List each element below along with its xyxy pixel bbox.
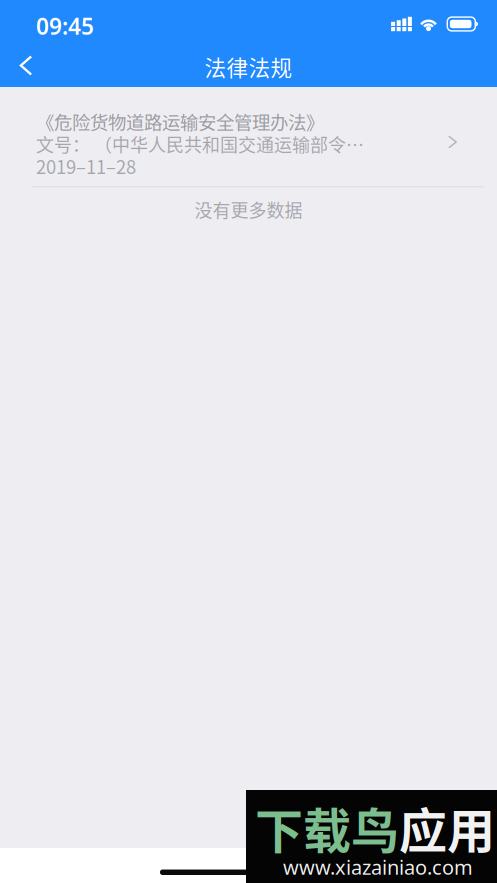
staticText: 09:45 — [36, 11, 94, 41]
button[interactable]: Back — [0, 44, 50, 87]
staticText: 2019–11–28 — [36, 153, 136, 179]
staticText: 《危险货物道路运输安全管理办法》 — [36, 108, 324, 135]
staticText: 应用 — [399, 793, 495, 862]
button[interactable]: 《危险货物道路运输安全管理办法》 — [0, 87, 497, 186]
staticText: 没有更多数据 — [194, 196, 302, 222]
staticText: 文号： （中华人民共和国交通运输部令… — [36, 131, 364, 157]
staticText: 下载鸟 — [255, 793, 399, 862]
staticText: 法律法规 — [204, 51, 292, 82]
staticText: www.xiazainiao.com — [283, 854, 473, 880]
